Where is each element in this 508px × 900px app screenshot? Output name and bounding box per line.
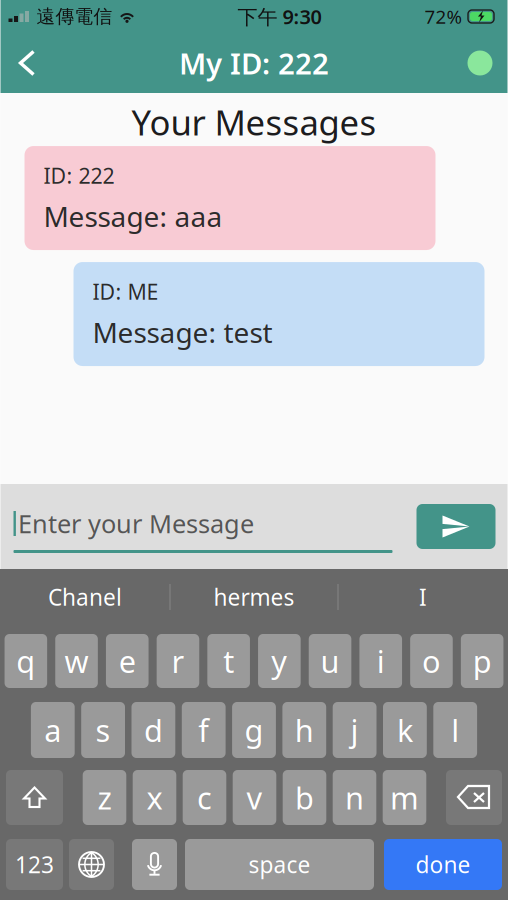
staticText: v bbox=[246, 777, 262, 818]
button[interactable]: o bbox=[410, 634, 453, 688]
button[interactable]: h bbox=[282, 702, 326, 758]
staticText: y bbox=[271, 641, 287, 681]
button[interactable]: Status bbox=[452, 34, 507, 91]
button[interactable]: Chanel bbox=[0, 569, 169, 625]
button[interactable]: u bbox=[309, 634, 351, 688]
button[interactable]: j bbox=[333, 702, 376, 758]
staticText: My ID: 222 bbox=[179, 43, 329, 82]
staticText: Message: aaa bbox=[43, 198, 222, 235]
button[interactable]: q bbox=[4, 634, 47, 688]
staticText: 123 bbox=[15, 849, 54, 879]
staticText: 下午 9:30 bbox=[237, 3, 321, 30]
button[interactable]: a bbox=[31, 702, 75, 758]
button[interactable]: Dictate bbox=[132, 839, 177, 890]
staticText: r bbox=[171, 641, 184, 681]
staticText: Your Messages bbox=[131, 99, 376, 145]
button[interactable]: g bbox=[232, 702, 276, 758]
staticText: done bbox=[415, 849, 470, 879]
staticText: w bbox=[64, 641, 88, 681]
staticText: c bbox=[197, 777, 212, 818]
staticText: k bbox=[397, 710, 413, 750]
button[interactable]: I bbox=[338, 569, 507, 625]
button[interactable]: hermes bbox=[170, 569, 337, 625]
button[interactable]: p bbox=[461, 634, 503, 688]
staticText: i bbox=[377, 641, 385, 681]
staticText: 72% bbox=[424, 4, 462, 29]
staticText: x bbox=[146, 777, 162, 818]
staticText: h bbox=[295, 710, 314, 750]
button[interactable]: i bbox=[359, 634, 402, 688]
button[interactable]: s bbox=[81, 702, 125, 758]
staticText: u bbox=[321, 641, 340, 681]
staticText: j bbox=[351, 710, 359, 750]
button[interactable]: t bbox=[207, 634, 250, 688]
button[interactable]: Delete bbox=[446, 770, 502, 825]
button[interactable]: m bbox=[383, 770, 426, 825]
button[interactable]: z bbox=[83, 770, 126, 825]
button[interactable]: w bbox=[55, 634, 98, 688]
staticText: a bbox=[44, 710, 61, 750]
staticText: Chanel bbox=[48, 582, 122, 612]
button[interactable]: Next keyboard bbox=[69, 839, 114, 890]
button[interactable]: 123 bbox=[6, 839, 63, 890]
button[interactable]: l bbox=[433, 702, 477, 758]
staticText: g bbox=[244, 710, 263, 750]
staticText: z bbox=[97, 777, 111, 818]
staticText: s bbox=[96, 710, 111, 750]
staticText: m bbox=[390, 777, 419, 818]
button[interactable]: done bbox=[384, 839, 502, 890]
button[interactable]: r bbox=[157, 634, 199, 688]
staticText: Enter your Message bbox=[18, 507, 254, 540]
button[interactable]: Shift bbox=[6, 770, 63, 825]
button[interactable]: c bbox=[183, 770, 226, 825]
button[interactable]: d bbox=[131, 702, 175, 758]
staticText: ID: 222 bbox=[43, 161, 114, 190]
staticText: f bbox=[198, 710, 209, 750]
button[interactable]: f bbox=[182, 702, 226, 758]
staticText: e bbox=[119, 641, 136, 681]
button[interactable]: Back bbox=[0, 34, 53, 91]
staticText: n bbox=[345, 777, 364, 818]
button[interactable]: v bbox=[233, 770, 276, 825]
staticText: p bbox=[473, 641, 492, 681]
staticText: I bbox=[419, 582, 427, 612]
button[interactable]: space bbox=[185, 839, 374, 890]
staticText: 遠傳電信 bbox=[36, 5, 112, 28]
staticText: space bbox=[248, 849, 310, 879]
button[interactable]: e bbox=[106, 634, 148, 688]
button[interactable]: n bbox=[333, 770, 376, 825]
button[interactable]: Send bbox=[416, 504, 495, 549]
button[interactable]: b bbox=[283, 770, 326, 825]
staticText: q bbox=[16, 641, 35, 681]
staticText: ID: ME bbox=[92, 277, 158, 306]
staticText: t bbox=[223, 641, 234, 681]
staticText: hermes bbox=[213, 582, 294, 612]
button[interactable]: k bbox=[383, 702, 427, 758]
button[interactable]: x bbox=[133, 770, 176, 825]
staticText: o bbox=[422, 641, 441, 681]
button[interactable]: y bbox=[258, 634, 301, 688]
staticText: b bbox=[295, 777, 314, 818]
staticText: l bbox=[451, 710, 459, 750]
staticText: Message: test bbox=[92, 314, 272, 351]
staticText: d bbox=[144, 710, 163, 750]
